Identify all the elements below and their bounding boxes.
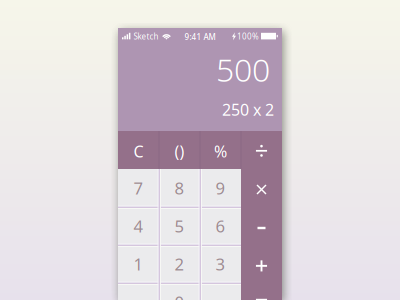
button[interactable]: 6 <box>200 207 241 245</box>
staticText: 1 <box>133 253 143 275</box>
staticText: 8 <box>174 177 184 199</box>
button[interactable]: Equals <box>241 283 282 300</box>
button[interactable]: 7 <box>118 169 159 207</box>
staticText: 3 <box>215 253 225 275</box>
staticText: 500 <box>216 48 270 90</box>
staticText: 250 x 2 <box>222 99 274 120</box>
staticText: 6 <box>215 215 225 237</box>
staticText: 9:41 AM <box>184 31 215 42</box>
button[interactable]: Minus <box>241 207 282 245</box>
button[interactable] <box>118 283 159 300</box>
button[interactable]: 4 <box>118 207 159 245</box>
button[interactable]: Plus <box>241 245 282 283</box>
staticText: 2 <box>174 253 184 275</box>
staticText: 100% <box>237 31 259 42</box>
button[interactable]: 2 <box>159 245 200 283</box>
staticText: 4 <box>133 215 143 237</box>
button[interactable]: % <box>200 131 241 169</box>
button[interactable]: 8 <box>159 169 200 207</box>
button[interactable]: C <box>118 131 159 169</box>
button[interactable]: Divide <box>241 131 282 169</box>
button[interactable]: 1 <box>118 245 159 283</box>
staticText: 7 <box>133 177 143 199</box>
staticText: 9 <box>215 177 225 199</box>
button[interactable]: 9 <box>200 169 241 207</box>
staticText: C <box>133 140 143 162</box>
staticText: 0 <box>174 291 184 300</box>
button[interactable]: . <box>200 283 241 300</box>
staticText: % <box>214 140 227 162</box>
staticText: 5 <box>174 215 184 237</box>
staticText: () <box>174 140 184 162</box>
button[interactable]: Multiply <box>241 169 282 207</box>
button[interactable]: 3 <box>200 245 241 283</box>
staticText: Sketch <box>133 31 158 42</box>
button[interactable]: 5 <box>159 207 200 245</box>
button[interactable]: () <box>159 131 200 169</box>
button[interactable]: 0 <box>159 283 200 300</box>
